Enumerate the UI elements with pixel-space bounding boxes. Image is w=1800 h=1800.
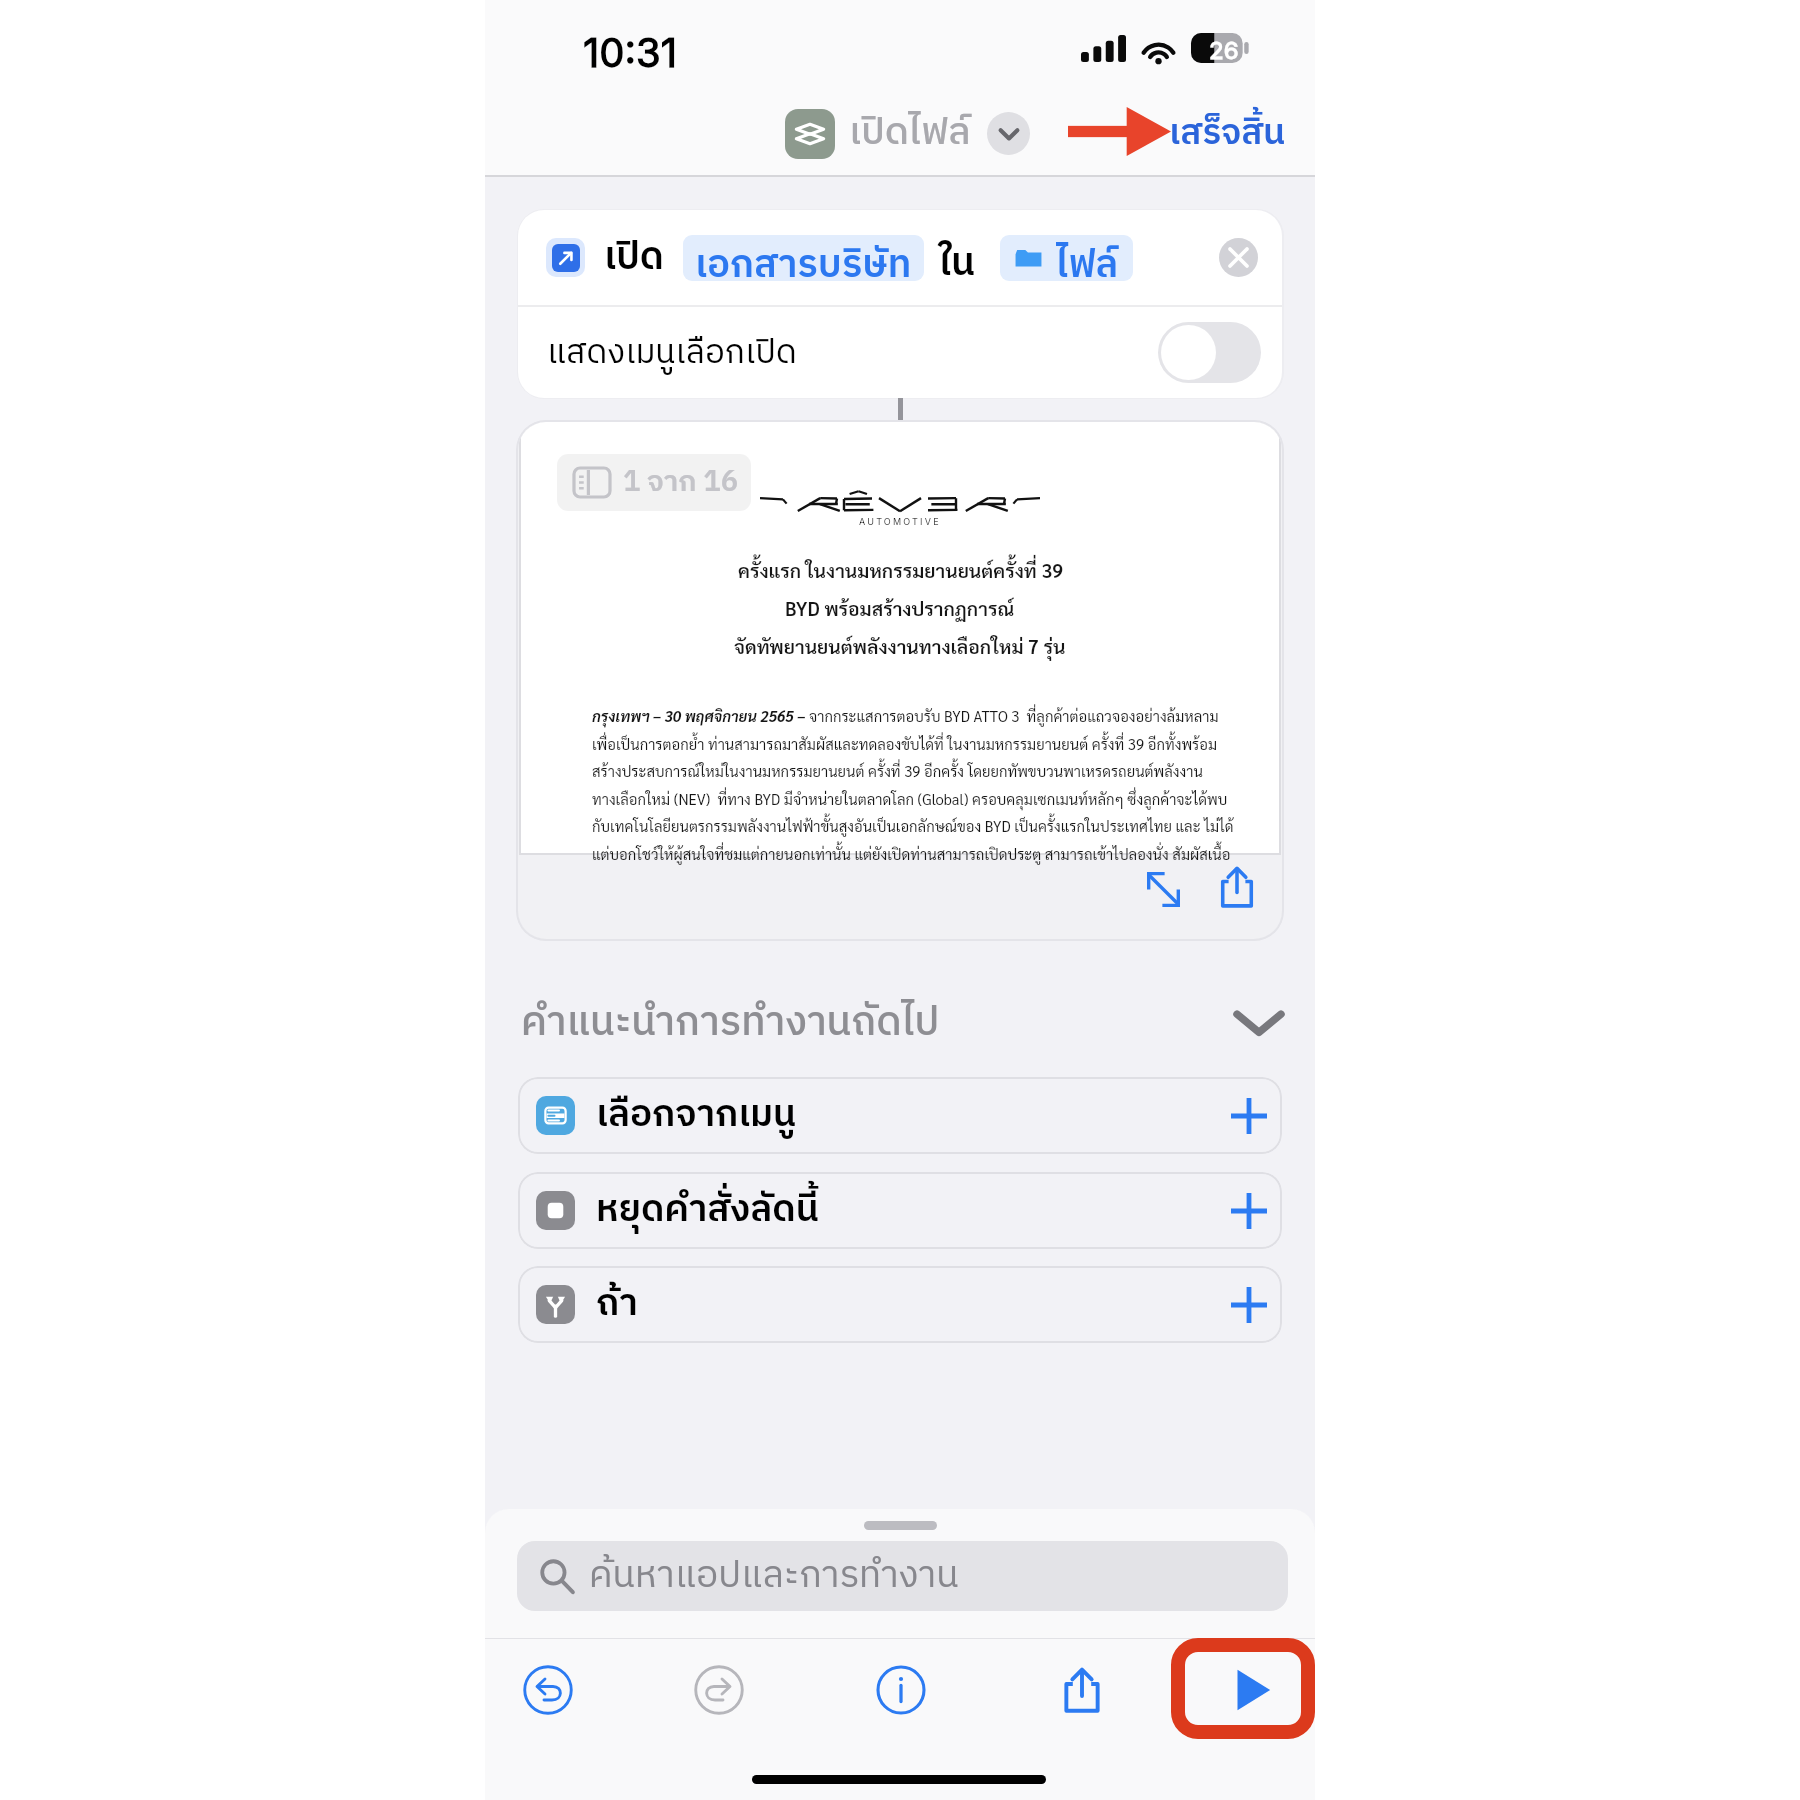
button[interactable]: Share — [1036, 1644, 1128, 1736]
button[interactable]: Toggle show open menu — [1158, 322, 1261, 383]
button[interactable]: Redo — [673, 1644, 765, 1736]
staticText: ค้นหาแอปและการทำงาน — [589, 1546, 959, 1607]
staticText: ทางเลือกใหม่ (NEV) ที่ทาง BYD มีจำหน่ายใ… — [592, 789, 1228, 808]
button[interactable]: Share preview — [1202, 852, 1272, 922]
staticText: แต่บอกโชว์ให้ผู้สนใจที่ชมแต่กายนอกเท่านั… — [592, 844, 1231, 863]
staticText: หยุดคำสั่งลัดนี้ — [596, 1180, 819, 1241]
staticText: เลือกจากเมนู — [596, 1085, 797, 1146]
button[interactable]: ถ้า — [518, 1266, 1282, 1343]
staticText: เปิดไฟล์ — [849, 102, 971, 165]
button[interactable]: หยุดคำสั่งลัดนี้ — [518, 1172, 1282, 1249]
button[interactable]: เลือกจากเมนู — [518, 1077, 1282, 1154]
staticText: กรุงเทพฯ – 30 พฤศจิกายน 2565 – — [592, 706, 809, 725]
staticText: BYD พร้อมสร้างปรากฏการณ์ — [785, 595, 1015, 620]
button[interactable]: Run shortcut — [1204, 1644, 1296, 1736]
button[interactable]: Shortcut options — [987, 112, 1030, 155]
staticText: เพื่อเป็นการตอกย้ำ ท่านสามารถมาสัมผัสและ… — [592, 734, 1217, 753]
staticText: ไฟล์ — [1056, 235, 1119, 281]
button[interactable]: AUTOMOTIVE — [518, 422, 1282, 939]
staticText: แสดงเมนูเลือกเปิด — [547, 326, 797, 380]
staticText: 1 จาก 16 — [623, 459, 739, 507]
button[interactable]: เปิด — [518, 210, 1282, 305]
button[interactable]: Undo — [502, 1644, 594, 1736]
staticText: เปิด — [604, 227, 664, 290]
button[interactable]: Info — [855, 1644, 947, 1736]
staticText: จากกระแสการตอบรับ BYD ATTO 3 ที่ลูกค้าต่… — [809, 706, 1219, 725]
staticText: เสร็จสิ้น — [1169, 105, 1286, 163]
button[interactable]: Expand preview — [1128, 854, 1198, 924]
staticText: AUTOMOTIVE — [859, 516, 941, 527]
button[interactable]: ค้นหาแอปและการทำงาน — [517, 1541, 1288, 1611]
staticText: สร้างประสบการณ์ใหม่ในงานมหกรรมยานยนต์ คร… — [592, 761, 1203, 780]
staticText: ครั้งแรก ในงานมหกรรมยานยนต์ครั้งที่ 39 — [738, 557, 1063, 582]
button[interactable]: คำแนะนำการทำงานถัดไป — [485, 982, 1315, 1064]
staticText: 10:31 — [583, 28, 678, 76]
staticText: กับเทคโนโลยียนตรกรรมพลังงานไฟฟ้าขั้นสูงอ… — [592, 816, 1234, 835]
staticText: เอกสารบริษัท — [695, 235, 912, 281]
button[interactable]: เสร็จสิ้น — [1163, 92, 1292, 175]
staticText: คำแนะนำการทำงานถัดไป — [521, 990, 940, 1056]
staticText: จัดทัพยานยนต์พลังงานทางเลือกใหม่ 7 รุ่น — [734, 633, 1066, 658]
staticText: ถ้า — [596, 1274, 638, 1335]
button[interactable]: แสดงเมนูเลือกเปิด — [518, 307, 1282, 398]
button[interactable]: Remove action — [1219, 238, 1258, 277]
staticText: 26 — [1209, 36, 1239, 65]
staticText: ใน — [939, 233, 975, 296]
